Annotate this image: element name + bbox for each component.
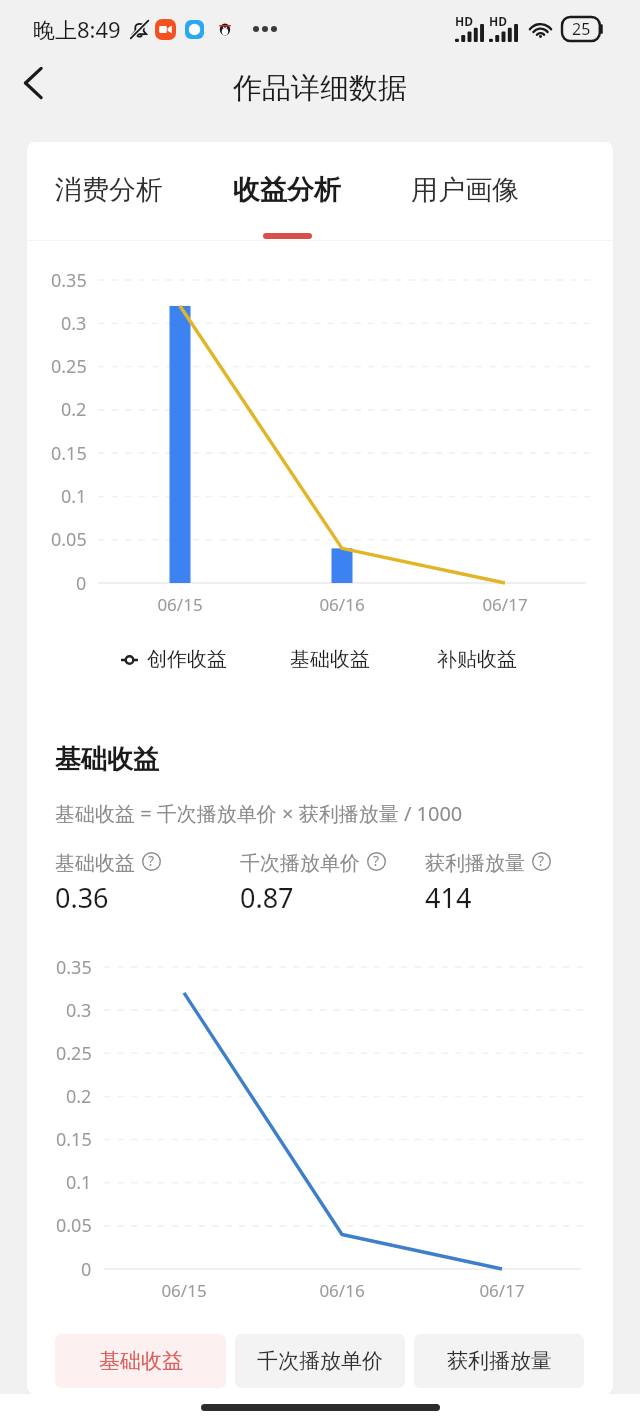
staticText: 补贴收益 — [437, 647, 517, 672]
staticText: 0.05 — [51, 527, 87, 552]
staticText: 基础收益 = 千次播放单价 × 获利播放量 / 1000 — [55, 800, 463, 827]
staticText: 晚上8:49 — [33, 14, 121, 44]
staticText: 基础收益 — [55, 743, 159, 776]
button[interactable]: 收益分析 — [233, 142, 341, 238]
staticText: 0.3 — [66, 998, 92, 1023]
staticText: 获利播放量 — [425, 851, 525, 876]
button[interactable]: Back — [6, 55, 62, 111]
staticText: 0.25 — [51, 354, 87, 379]
staticText: 千次播放单价 — [257, 1348, 383, 1374]
staticText: 0.2 — [66, 1084, 92, 1109]
other: Help — [367, 852, 386, 871]
staticText: 千次播放单价 — [240, 851, 360, 876]
staticText: 获利播放量 — [447, 1348, 552, 1374]
button[interactable]: 千次播放单价 — [235, 1334, 405, 1388]
staticText: 06/16 — [319, 1279, 365, 1302]
staticText: 0.87 — [240, 879, 294, 916]
staticText: 0.15 — [51, 441, 87, 466]
staticText: 消费分析 — [55, 173, 163, 207]
staticText: 414 — [425, 879, 472, 916]
staticText: 收益分析 — [233, 173, 341, 207]
staticText: 0.15 — [56, 1127, 92, 1152]
staticText: 0.36 — [55, 879, 109, 916]
staticText: 0.2 — [61, 397, 87, 422]
staticText: 0.3 — [61, 311, 87, 336]
staticText: 06/17 — [479, 1279, 525, 1302]
staticText: HD — [489, 13, 507, 29]
staticText: 0.35 — [51, 268, 87, 293]
staticText: 0.1 — [66, 1170, 92, 1195]
staticText: 06/15 — [161, 1279, 207, 1302]
staticText: 0 — [81, 1257, 92, 1282]
staticText: ? — [538, 851, 545, 870]
button[interactable]: 消费分析 — [55, 142, 163, 238]
staticText: 0 — [76, 571, 87, 596]
staticText: 06/15 — [157, 593, 203, 616]
staticText: 用户画像 — [411, 173, 519, 207]
button[interactable]: 获利播放量 — [414, 1334, 584, 1388]
staticText: 0.05 — [56, 1213, 92, 1238]
staticText: HD — [455, 13, 473, 29]
staticText: 基础收益 — [99, 1348, 183, 1374]
staticText: ? — [148, 851, 155, 870]
staticText: 25 — [572, 18, 591, 40]
staticText: 基础收益 — [55, 851, 135, 876]
button[interactable]: 用户画像 — [411, 142, 519, 238]
staticText: 作品详细数据 — [233, 70, 407, 107]
staticText: 0.1 — [61, 484, 87, 509]
other: Help — [142, 852, 161, 871]
staticText: 基础收益 — [290, 647, 370, 672]
staticText: ? — [373, 851, 380, 870]
staticText: 06/16 — [319, 593, 365, 616]
staticText: 06/17 — [482, 593, 528, 616]
staticText: 0.35 — [56, 955, 92, 980]
other: Help — [532, 852, 551, 871]
staticText: 0.25 — [56, 1041, 92, 1066]
button[interactable]: 基础收益 — [55, 1334, 226, 1388]
staticText: 创作收益 — [147, 647, 227, 672]
